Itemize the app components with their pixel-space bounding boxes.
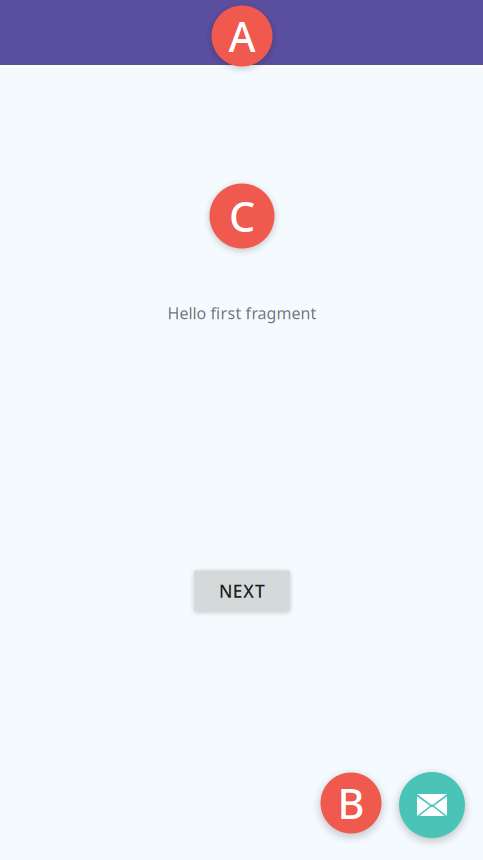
staticText: NEXT xyxy=(219,579,265,602)
staticText: C xyxy=(229,189,255,243)
button[interactable]: B xyxy=(320,772,381,833)
staticText: Hello first fragment xyxy=(167,302,316,324)
staticText: B xyxy=(337,776,364,830)
button[interactable]: NEXT xyxy=(194,570,290,611)
staticText: A xyxy=(228,9,255,63)
button[interactable]: Compose mail xyxy=(399,772,465,838)
